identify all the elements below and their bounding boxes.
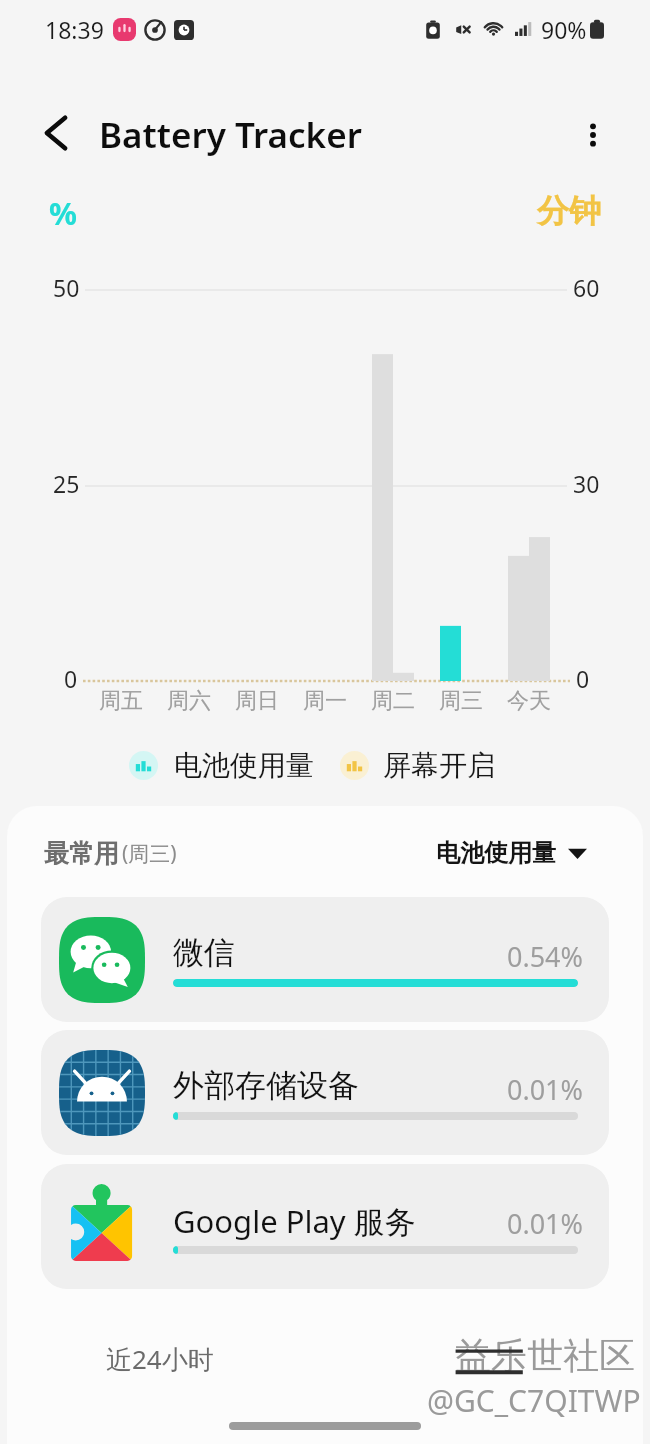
- staticText: 微信: [173, 933, 235, 972]
- button[interactable]: 外部存储设备: [41, 1030, 609, 1155]
- staticText: (周三): [122, 839, 177, 868]
- staticText: 周二: [371, 687, 415, 715]
- staticText: 外部存储设备: [173, 1066, 359, 1105]
- staticText: 周六: [167, 687, 211, 715]
- staticText: 0: [576, 663, 590, 694]
- button[interactable]: More options: [566, 108, 620, 162]
- staticText: 0: [64, 663, 78, 694]
- staticText: 周日: [235, 687, 279, 715]
- staticText: 电池使用量: [174, 748, 314, 783]
- staticText: 18:39: [45, 14, 104, 45]
- staticText: 周五: [99, 687, 143, 715]
- button[interactable]: Back: [28, 105, 84, 161]
- staticText: Battery Tracker: [99, 111, 362, 159]
- staticText: 最常用: [44, 838, 119, 869]
- staticText: 30: [573, 468, 600, 499]
- staticText: 周一: [303, 687, 347, 715]
- button[interactable]: 最常用: [44, 838, 177, 869]
- staticText: 近24小时: [106, 1341, 214, 1377]
- staticText: 分钟: [537, 191, 601, 231]
- staticText: 今天: [507, 687, 551, 715]
- staticText: 屏幕开启: [383, 748, 495, 783]
- staticText: 25: [53, 468, 80, 499]
- button[interactable]: 屏幕开启: [340, 748, 495, 783]
- staticText: 0.01%: [507, 1205, 584, 1242]
- staticText: Google Play 服务: [173, 1200, 416, 1242]
- button[interactable]: 微信: [41, 897, 609, 1022]
- staticText: 益乐世社区: [455, 1333, 635, 1378]
- staticText: 0.01%: [507, 1071, 584, 1108]
- staticText: 周三: [439, 687, 483, 715]
- staticText: 60: [573, 272, 600, 303]
- button[interactable]: Google Play 服务: [41, 1164, 609, 1289]
- staticText: 0.54%: [507, 938, 584, 975]
- staticText: 电池使用量: [436, 838, 556, 868]
- button[interactable]: 电池使用量: [436, 838, 587, 868]
- staticText: 90%: [541, 14, 587, 45]
- staticText: 50: [53, 272, 80, 303]
- staticText: @GC_C7QITWP: [427, 1380, 641, 1421]
- button[interactable]: 电池使用量: [129, 748, 314, 783]
- staticText: %: [49, 192, 77, 234]
